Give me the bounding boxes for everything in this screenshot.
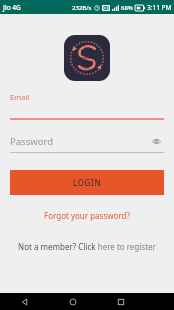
staticText: 232B/s (72, 4, 92, 12)
button[interactable]: Not a member? Click here to register (12, 238, 162, 255)
button[interactable]: Back (0, 293, 49, 310)
staticText: 3:11 PM (147, 3, 172, 12)
button[interactable]: Forgot your password? (38, 207, 136, 224)
button[interactable]: Home (49, 293, 97, 310)
staticText: Jio 4G (3, 3, 21, 12)
staticText: LOGIN (73, 177, 102, 188)
button[interactable]: Email (10, 92, 30, 102)
button[interactable]: Recent apps (97, 293, 145, 310)
button[interactable]: Password (10, 133, 164, 149)
button[interactable]: LOGIN (10, 170, 164, 195)
button[interactable]: App logo (64, 35, 110, 81)
button[interactable]: Show password (148, 133, 164, 149)
staticText: 68% (121, 4, 133, 12)
staticText: Password (10, 135, 148, 148)
